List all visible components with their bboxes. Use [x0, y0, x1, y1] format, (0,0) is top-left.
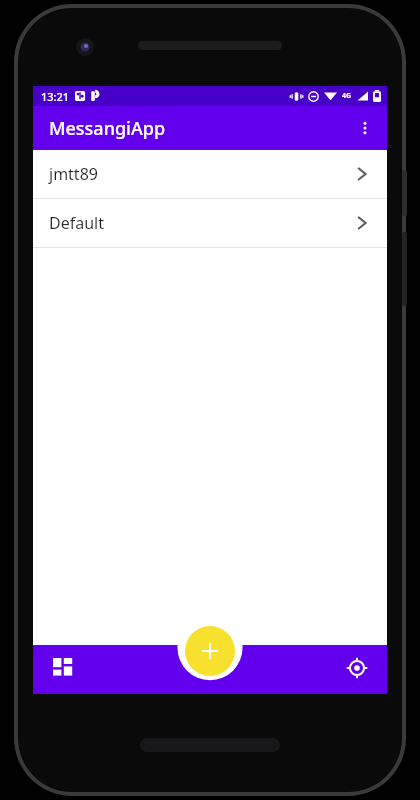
button[interactable]: Add [185, 626, 235, 676]
staticText: 4G [342, 91, 352, 101]
staticText: jmtt89 [49, 163, 353, 185]
staticText: MessangiApp [49, 116, 166, 141]
staticText: Default [49, 212, 353, 234]
button[interactable]: Dashboard [41, 646, 85, 690]
button[interactable]: Default [33, 199, 387, 247]
button[interactable]: More options [343, 106, 387, 150]
button[interactable]: jmtt89 [33, 150, 387, 198]
button[interactable]: Location [335, 646, 379, 690]
staticText: 13:21 [41, 89, 70, 104]
